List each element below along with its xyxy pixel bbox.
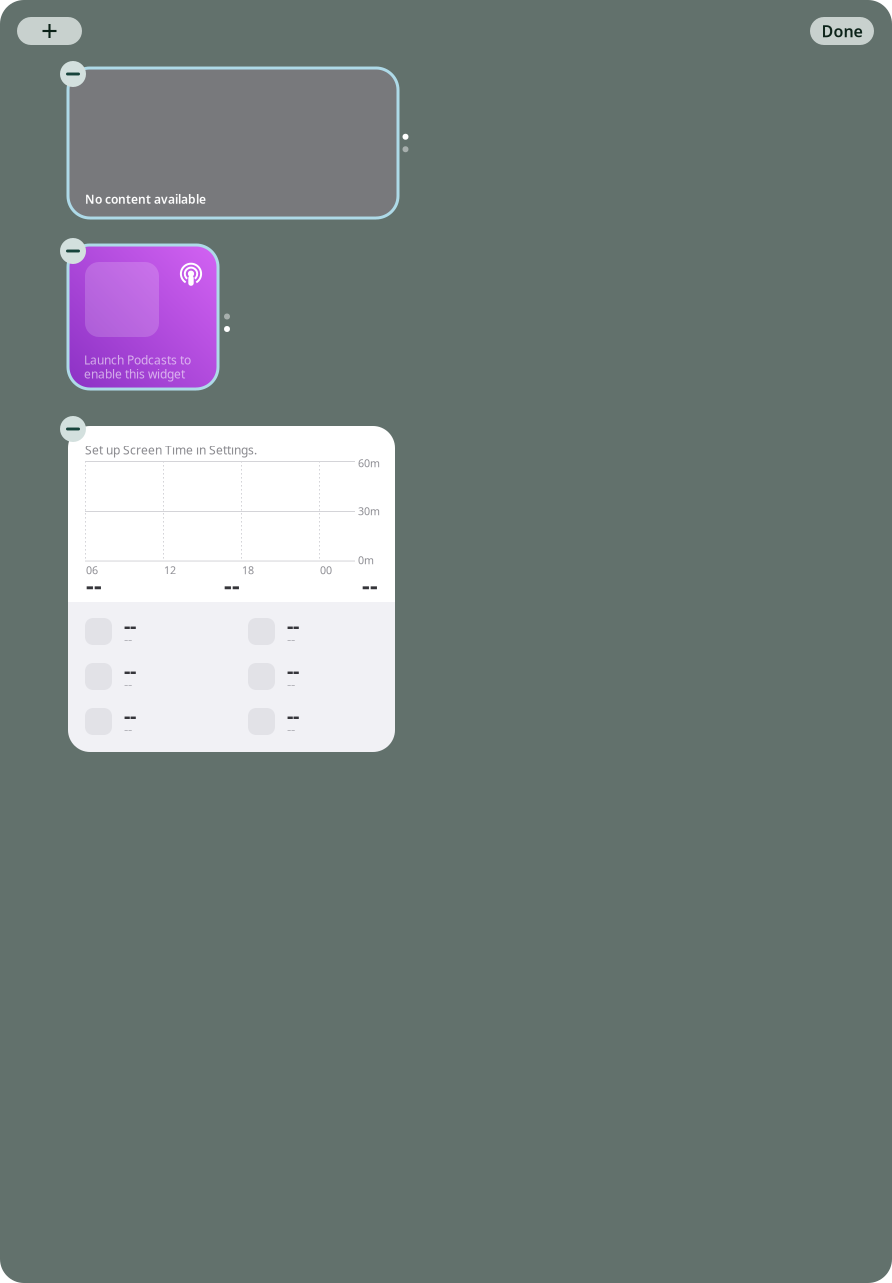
staticText: -- — [124, 702, 136, 729]
button[interactable]: Remove widget — [60, 61, 86, 87]
staticText: -- — [86, 569, 102, 601]
button[interactable]: Done — [810, 17, 874, 45]
staticText: -- — [224, 569, 240, 601]
staticText: 30m — [358, 504, 380, 518]
staticText: Launch Podcasts to — [84, 352, 191, 368]
staticText: -- — [124, 675, 132, 693]
button[interactable]: Remove widget — [60, 416, 86, 442]
staticText: Done — [821, 20, 862, 42]
staticText: -- — [287, 675, 295, 693]
staticText: 0m — [358, 553, 374, 567]
staticText: -- — [287, 702, 299, 729]
staticText: 12 — [164, 563, 176, 577]
staticText: -- — [287, 612, 299, 639]
staticText: -- — [124, 720, 132, 738]
staticText: No content available — [85, 191, 206, 207]
staticText: -- — [287, 657, 299, 684]
staticText: -- — [287, 720, 295, 738]
staticText: -- — [124, 630, 132, 648]
staticText: enable this widget — [84, 366, 185, 382]
staticText: 60m — [358, 456, 380, 470]
staticText: -- — [362, 569, 378, 601]
staticText: 18 — [242, 563, 254, 577]
staticText: -- — [124, 657, 136, 684]
staticText: Set up Screen Time in Settings. — [85, 442, 257, 458]
staticText: 06 — [86, 563, 98, 577]
staticText: 00 — [320, 563, 332, 577]
button[interactable]: Set up Screen Time in Settings. — [68, 426, 395, 752]
button[interactable]: Remove widget — [60, 238, 86, 264]
staticText: -- — [124, 612, 136, 639]
staticText: -- — [287, 630, 295, 648]
button[interactable]: No content available — [68, 68, 398, 218]
button[interactable]: Add widget — [17, 17, 82, 45]
button[interactable]: Launch Podcasts to — [68, 245, 218, 389]
